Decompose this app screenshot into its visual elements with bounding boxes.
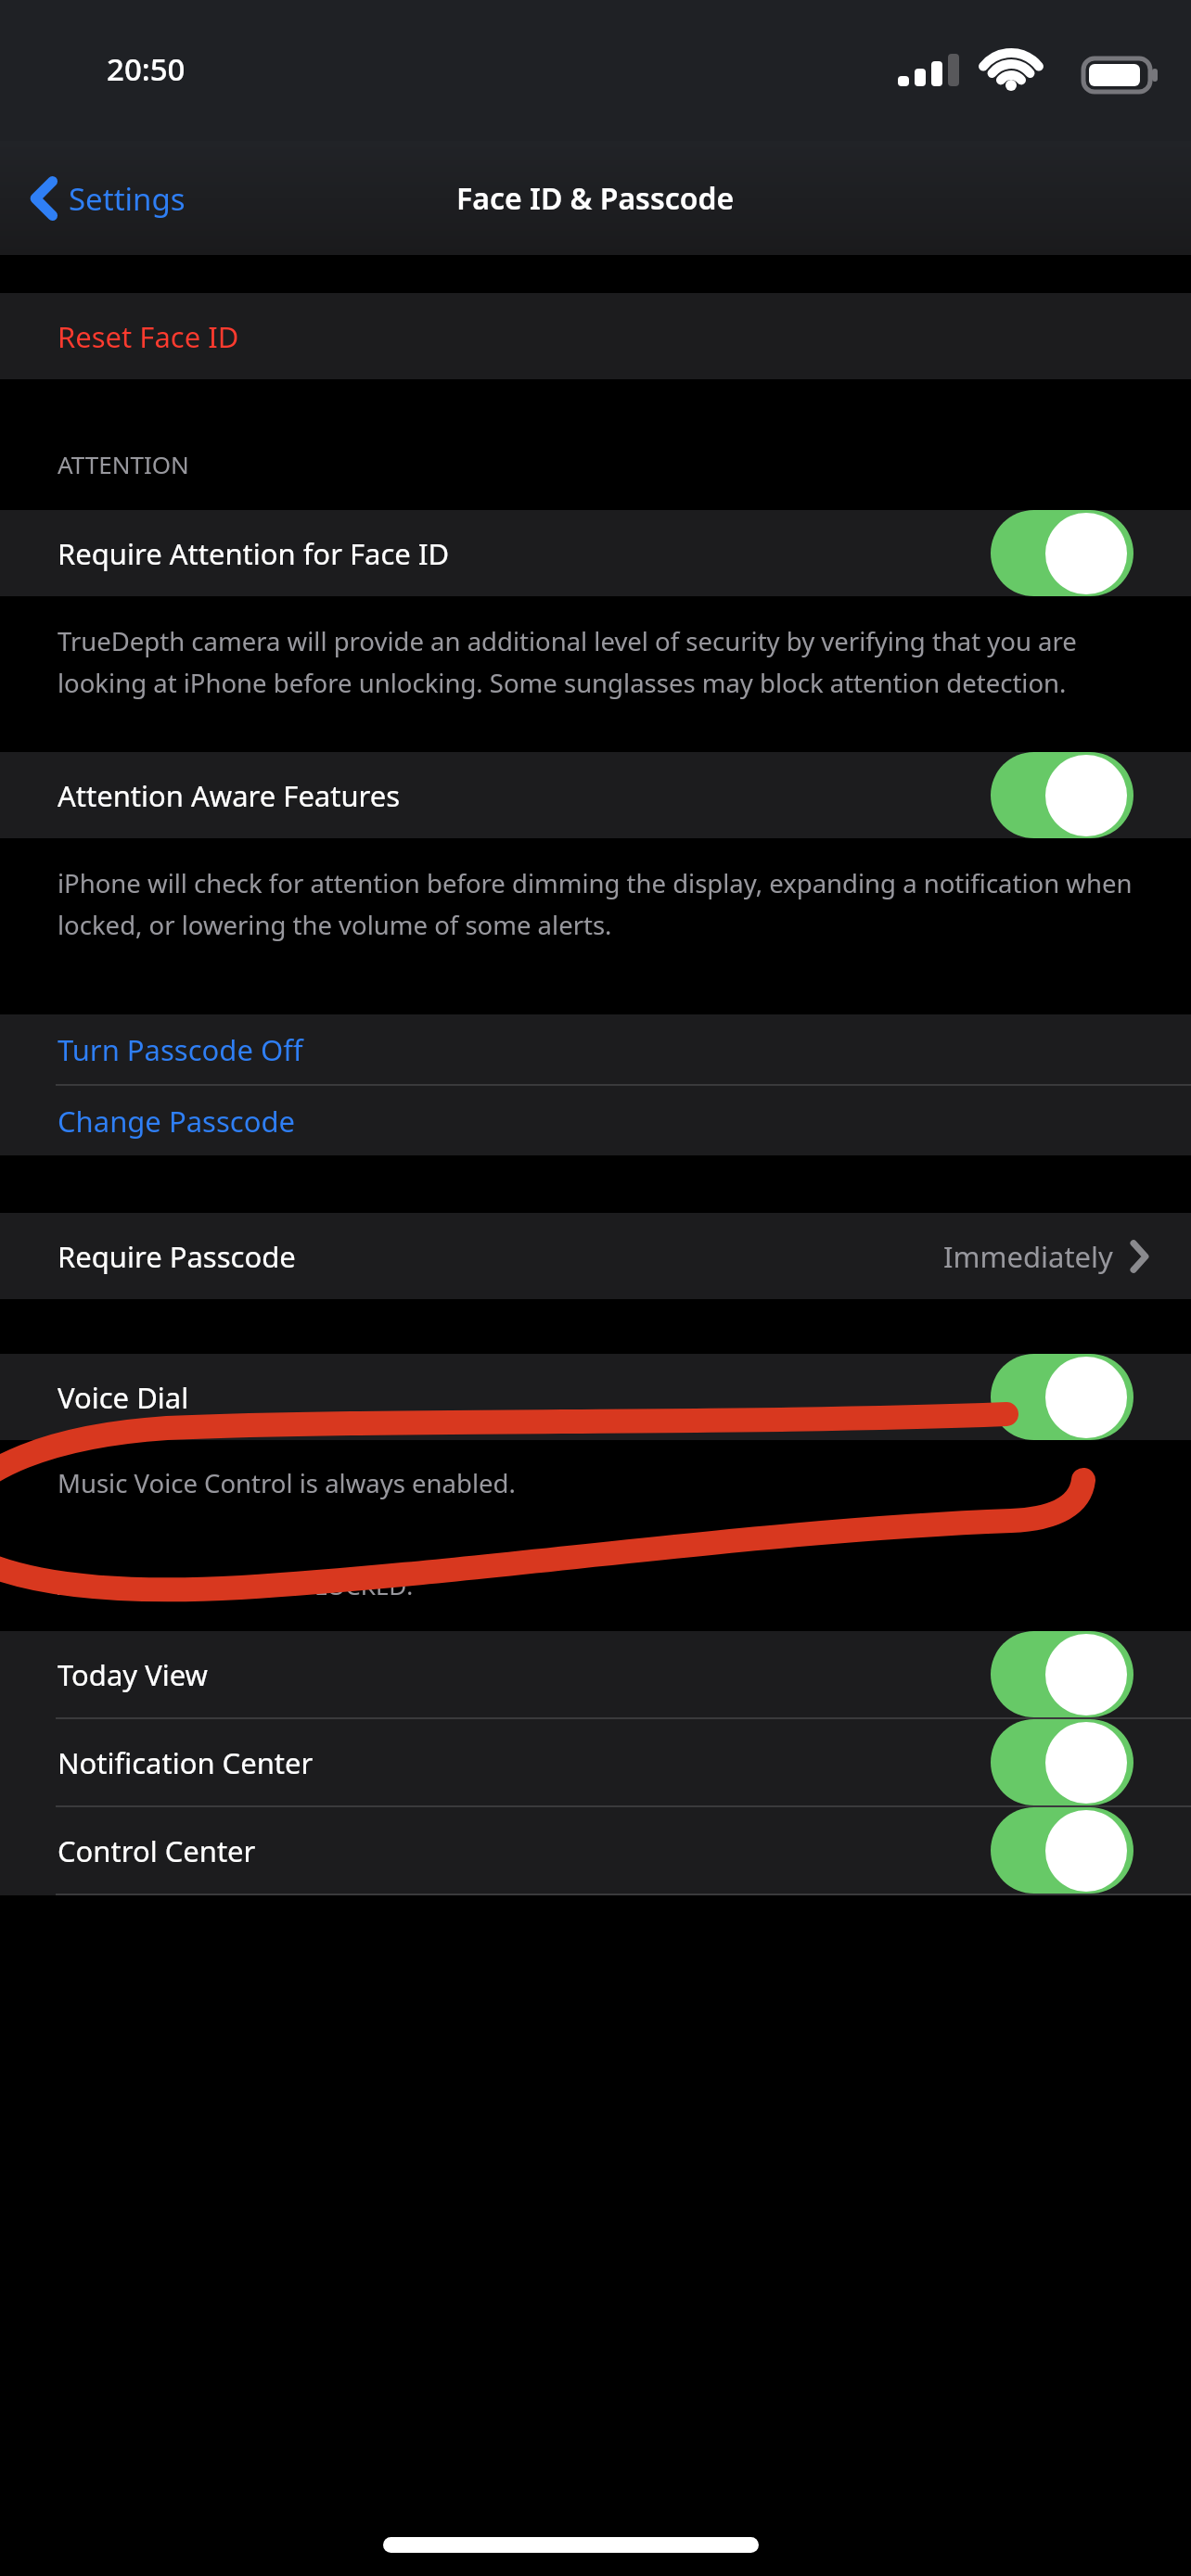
staticText: ATTENTION <box>58 448 189 480</box>
button[interactable]: Notification Center <box>0 1719 1191 1807</box>
button[interactable]: Attention Aware Features <box>0 752 1191 838</box>
staticText: 20:50 <box>107 48 186 90</box>
staticText: TrueDepth camera will provide an additio… <box>58 624 1154 700</box>
staticText: Reset Face ID <box>58 317 239 356</box>
staticText: Notification Center <box>58 1743 991 1782</box>
staticText: Settings <box>69 178 186 220</box>
staticText: Control Center <box>58 1831 991 1870</box>
staticText: Music Voice Control is always enabled. <box>58 1466 516 1500</box>
staticText: Immediately <box>943 1237 1113 1276</box>
button[interactable]: Turn Passcode Off <box>0 1014 1191 1086</box>
staticText: Turn Passcode Off <box>58 1030 303 1069</box>
button[interactable]: Reset Face ID <box>0 293 1191 379</box>
staticText: Voice Dial <box>58 1378 991 1417</box>
staticText: Attention Aware Features <box>58 776 991 815</box>
button[interactable]: Today View <box>0 1631 1191 1719</box>
button[interactable]: Require Passcode <box>0 1213 1191 1299</box>
staticText: Change Passcode <box>58 1102 295 1141</box>
staticText: ALLOW ACCESS WHEN LOCKED: <box>58 1569 414 1601</box>
staticText: Require Attention for Face ID <box>58 534 991 573</box>
staticText: Today View <box>58 1655 991 1694</box>
button[interactable]: Back to Settings <box>20 163 193 234</box>
staticText: Require Passcode <box>58 1237 943 1276</box>
button[interactable]: Change Passcode <box>0 1086 1191 1155</box>
button[interactable]: Control Center <box>0 1807 1191 1895</box>
staticText: iPhone will check for attention before d… <box>58 866 1154 942</box>
staticText: Face ID & Passcode <box>456 178 735 219</box>
button[interactable]: Require Attention for Face ID <box>0 510 1191 596</box>
button[interactable]: Voice Dial <box>0 1354 1191 1440</box>
